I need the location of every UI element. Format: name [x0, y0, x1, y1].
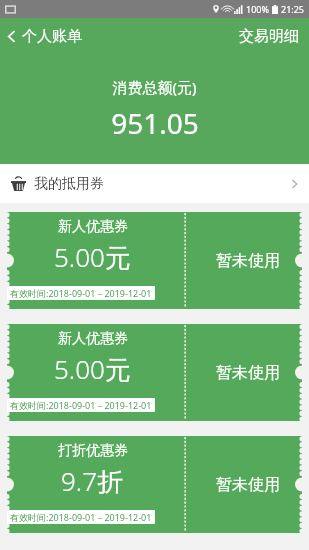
staticText: 951.05 — [111, 104, 199, 142]
staticText: 消费总额(元) — [112, 77, 197, 97]
staticText: 暂未使用 — [216, 475, 280, 495]
staticText: 有效时间:2018-09-01－2019-12-01 — [10, 287, 152, 299]
staticText: 5.00元 — [54, 239, 131, 275]
staticText: 21:25 — [281, 3, 305, 15]
staticText: 暂未使用 — [216, 363, 280, 383]
button[interactable]: Back — [0, 21, 94, 52]
staticText: 打折优惠券 — [58, 442, 128, 460]
staticText: 暂未使用 — [216, 251, 280, 271]
staticText: 100% — [246, 3, 269, 15]
button[interactable]: 新人优惠券 — [0, 211, 309, 310]
staticText: 个人账单 — [22, 27, 82, 46]
button[interactable]: 交易明细 — [229, 21, 309, 52]
staticText: 有效时间:2018-09-01－2019-12-01 — [10, 399, 152, 411]
staticText: 5.00元 — [54, 351, 131, 387]
staticText: 交易明细 — [239, 27, 299, 46]
staticText: 9.7折 — [61, 463, 124, 499]
button[interactable]: 我的抵用券 — [0, 164, 309, 203]
button[interactable]: 打折优惠券 — [0, 435, 309, 534]
staticText: 我的抵用券 — [34, 175, 104, 193]
other: Back — [7, 29, 16, 44]
staticText: 有效时间:2018-09-01－2019-12-01 — [10, 511, 152, 523]
staticText: 新人优惠券 — [58, 218, 128, 236]
staticText: 新人优惠券 — [58, 330, 128, 348]
button[interactable]: 新人优惠券 — [0, 323, 309, 422]
